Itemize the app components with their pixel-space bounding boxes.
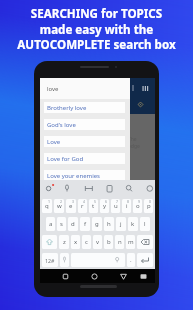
staticText: 6 bbox=[105, 199, 108, 204]
button[interactable]: Back bbox=[118, 271, 129, 282]
staticText: d bbox=[71, 220, 75, 228]
staticText: 3 bbox=[72, 199, 75, 204]
button[interactable]: x bbox=[71, 235, 80, 249]
staticText: 8 bbox=[127, 199, 130, 204]
button[interactable]: g bbox=[92, 217, 102, 231]
button[interactable]: Love for God bbox=[44, 153, 125, 164]
button[interactable]: Love bbox=[44, 136, 125, 147]
staticText: x bbox=[74, 238, 78, 246]
staticText: j bbox=[120, 220, 122, 228]
staticText: 1 bbox=[48, 199, 51, 204]
button[interactable]: Key bbox=[137, 253, 153, 267]
staticText: m bbox=[128, 238, 134, 246]
button[interactable]: h bbox=[104, 217, 114, 231]
staticText: f bbox=[84, 220, 87, 228]
button[interactable]: b bbox=[104, 235, 113, 249]
button[interactable]: Key bbox=[137, 235, 153, 249]
staticText: 4 bbox=[83, 199, 86, 204]
staticText: w bbox=[57, 202, 62, 210]
staticText: i bbox=[126, 202, 128, 210]
staticText: . bbox=[130, 256, 132, 264]
button[interactable]: Hide keyboard bbox=[138, 271, 149, 282]
button[interactable]: f bbox=[80, 217, 90, 231]
button[interactable]: o bbox=[133, 199, 142, 213]
button[interactable]: m bbox=[126, 235, 135, 249]
staticText: q bbox=[45, 202, 49, 210]
staticText: Love for God bbox=[47, 155, 84, 163]
button[interactable]: . bbox=[127, 253, 135, 267]
button[interactable]: Settings bbox=[137, 101, 144, 108]
staticText: r bbox=[81, 202, 84, 210]
staticText: v bbox=[96, 238, 100, 246]
staticText: 12# bbox=[45, 257, 55, 264]
button[interactable]: i bbox=[122, 199, 131, 213]
staticText: n bbox=[118, 238, 122, 246]
button[interactable]: Menu bbox=[141, 85, 148, 92]
staticText: k bbox=[131, 220, 135, 228]
staticText: o bbox=[136, 202, 140, 210]
staticText: SEARCHING for TOPICS made easy with the … bbox=[17, 6, 176, 52]
button[interactable]: z bbox=[59, 235, 69, 249]
staticText: 5 bbox=[94, 199, 97, 204]
staticText: l bbox=[144, 220, 146, 228]
button[interactable]: God's love bbox=[44, 119, 125, 130]
staticText: y bbox=[103, 202, 107, 210]
staticText: Love bbox=[47, 138, 61, 146]
button[interactable]: Brotherly love bbox=[44, 102, 125, 113]
button[interactable]: a bbox=[46, 217, 55, 231]
staticText: b bbox=[107, 238, 111, 246]
button[interactable]: Key bbox=[42, 235, 57, 249]
staticText: 7 bbox=[116, 199, 119, 204]
button[interactable]: q bbox=[42, 199, 52, 213]
button[interactable]: Love your enemies bbox=[44, 170, 125, 181]
staticText: a bbox=[49, 220, 53, 228]
button[interactable]: n bbox=[115, 235, 124, 249]
button[interactable]: c bbox=[82, 235, 91, 249]
staticText: Brotherly love bbox=[47, 104, 87, 112]
staticText: g bbox=[95, 220, 99, 228]
button[interactable]: p bbox=[144, 199, 153, 213]
button[interactable]: j bbox=[116, 217, 126, 231]
staticText: c bbox=[85, 238, 88, 246]
button[interactable]: s bbox=[57, 217, 66, 231]
staticText: t bbox=[92, 202, 95, 210]
button[interactable]: Key bbox=[60, 253, 69, 267]
staticText: 0 bbox=[149, 199, 152, 204]
button[interactable]: t bbox=[89, 199, 98, 213]
staticText: 2 bbox=[60, 199, 63, 204]
button[interactable]: d bbox=[68, 217, 78, 231]
button[interactable]: r bbox=[78, 199, 87, 213]
button[interactable]: u bbox=[111, 199, 120, 213]
button[interactable]: e bbox=[66, 199, 76, 213]
staticText: The edge bbox=[128, 136, 140, 150]
staticText: z bbox=[63, 238, 66, 246]
button[interactable]: More options bbox=[131, 85, 135, 91]
button[interactable]: k bbox=[128, 217, 138, 231]
staticText: God's love bbox=[47, 121, 76, 129]
button[interactable]: w bbox=[54, 199, 64, 213]
staticText: 9 bbox=[138, 199, 141, 204]
staticText: love bbox=[47, 85, 59, 93]
staticText: h bbox=[107, 220, 111, 228]
button[interactable]: l bbox=[140, 217, 150, 231]
button[interactable]: Recents bbox=[60, 271, 71, 282]
button[interactable]: y bbox=[100, 199, 109, 213]
button[interactable]: Space bbox=[71, 253, 125, 267]
button[interactable]: v bbox=[93, 235, 102, 249]
staticText: p bbox=[147, 202, 151, 210]
staticText: u bbox=[114, 202, 118, 210]
button[interactable]: 12# bbox=[42, 253, 58, 267]
staticText: e bbox=[69, 202, 73, 210]
staticText: Love your enemies bbox=[47, 172, 100, 180]
button[interactable]: Home bbox=[89, 271, 100, 282]
staticText: s bbox=[60, 220, 63, 228]
